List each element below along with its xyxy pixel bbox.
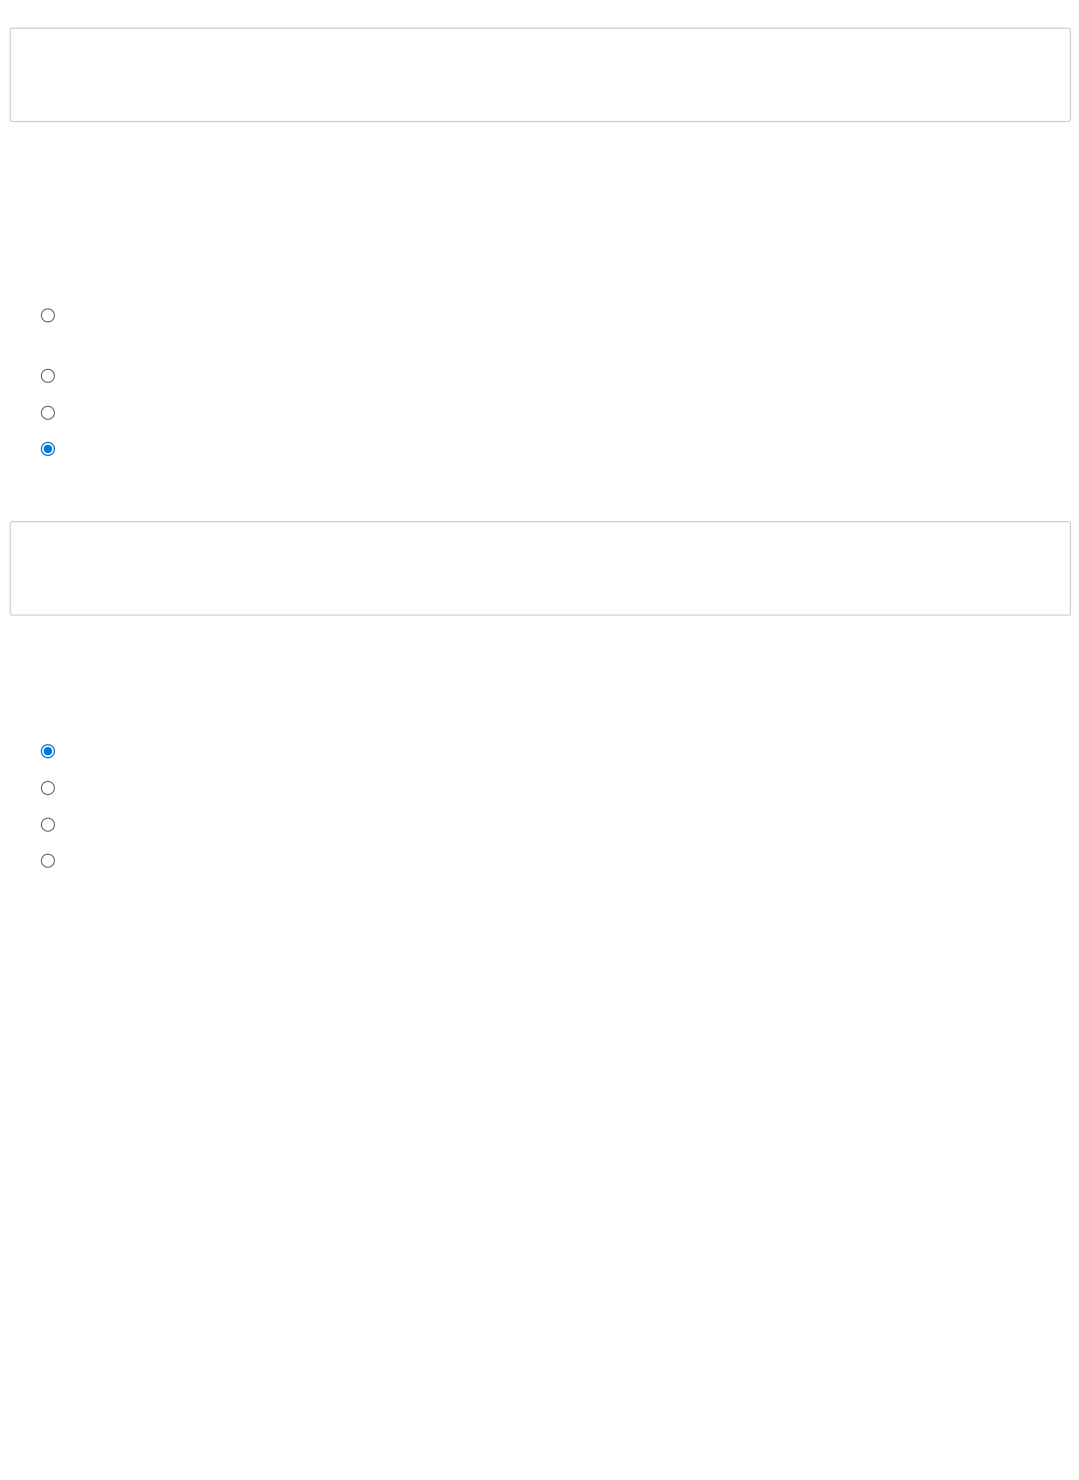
button[interactable]: Answer option	[37, 814, 59, 836]
button[interactable]: Answer option	[37, 304, 59, 326]
button[interactable]: Answer option	[37, 402, 59, 424]
button[interactable]: Selected answer	[37, 438, 59, 460]
button[interactable]: Answer option	[37, 777, 59, 799]
button[interactable]: Answer option	[37, 850, 59, 872]
button[interactable]: Answer option	[37, 365, 59, 387]
button[interactable]: Selected answer	[37, 740, 59, 762]
